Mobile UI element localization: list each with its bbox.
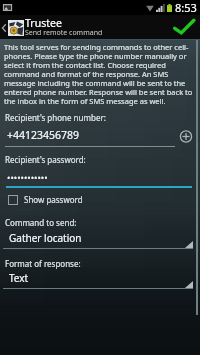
button[interactable]: Gather location xyxy=(2,225,194,249)
button[interactable]: Navigate up xyxy=(0,18,24,37)
staticText: Show password xyxy=(24,194,83,205)
staticText: •••••••••••• xyxy=(7,171,48,183)
staticText: +44123456789 xyxy=(7,128,80,142)
staticText: Recipient's phone number: xyxy=(5,112,106,123)
staticText: Recipient's password: xyxy=(5,154,86,165)
staticText: Format of response: xyxy=(5,258,81,269)
staticText: Gather location xyxy=(9,231,82,245)
staticText: Command to send: xyxy=(5,217,77,228)
staticText: Text xyxy=(9,271,29,285)
staticText: Trustee xyxy=(25,16,62,30)
staticText: 8:53 xyxy=(175,0,197,15)
button[interactable]: Send command xyxy=(166,15,200,40)
staticText: This tool serves for sending commands to… xyxy=(4,42,197,106)
button[interactable]: Show password xyxy=(4,194,83,205)
button[interactable]: Pick from contacts xyxy=(176,126,197,147)
staticText: Send remote command xyxy=(25,28,103,38)
button[interactable]: Text xyxy=(2,265,194,289)
